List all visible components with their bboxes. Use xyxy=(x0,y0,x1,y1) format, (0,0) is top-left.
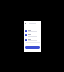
button[interactable] xyxy=(25,46,40,49)
